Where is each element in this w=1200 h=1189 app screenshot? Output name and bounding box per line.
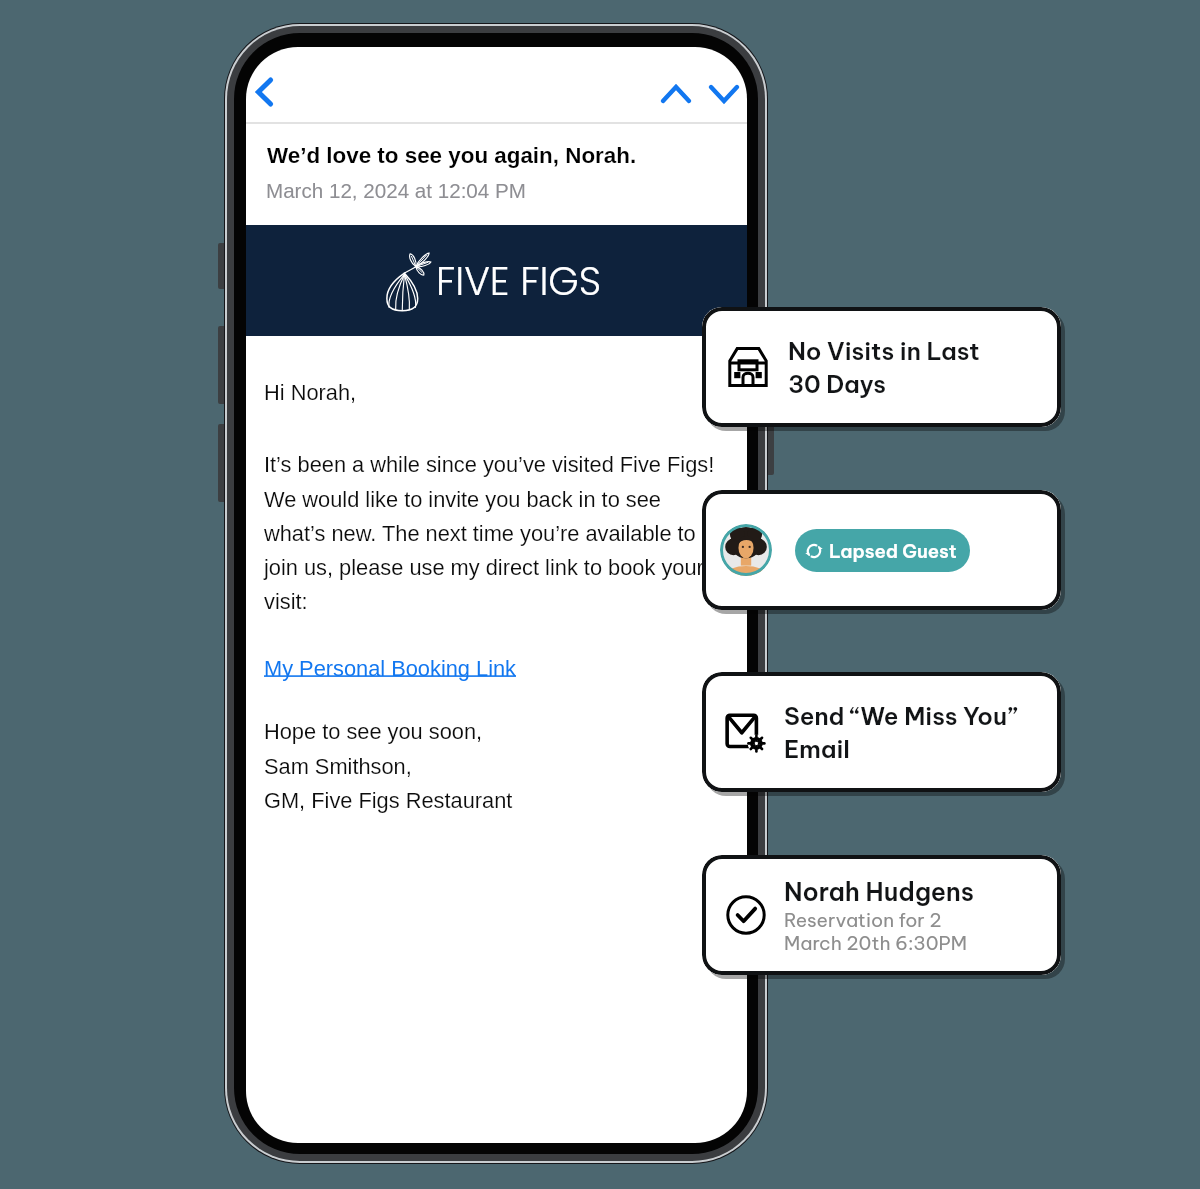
staticText: Reservation for 2 March 20th 6:30PM: [784, 908, 967, 955]
staticText: Norah Hudgens: [784, 876, 974, 908]
button[interactable]: Lapsed Guest: [795, 529, 970, 572]
button[interactable]: Previous message: [652, 70, 700, 118]
staticText: My Personal Booking Link: [264, 656, 517, 680]
staticText: No Visits in Last 30 Days: [788, 336, 980, 399]
staticText: We’d love to see you again, Norah.: [267, 143, 637, 168]
button[interactable]: Back: [246, 68, 282, 116]
staticText: Hi Norah,: [264, 380, 357, 404]
button[interactable]: Norah Hudgens reservation: [702, 855, 1061, 975]
button[interactable]: Lapsed Guest Norah: [702, 490, 1061, 610]
staticText: It’s been a while since you’ve visited F…: [264, 452, 715, 613]
staticText: Hope to see you soon, Sam Smithson, GM, …: [264, 719, 513, 812]
staticText: Send “We Miss You” Email: [784, 701, 1018, 764]
button[interactable]: My Personal Booking Link: [264, 656, 517, 680]
staticText: Lapsed Guest: [829, 539, 957, 563]
button[interactable]: Send We Miss You Email: [702, 672, 1061, 792]
button[interactable]: No Visits in Last 30 Days: [702, 307, 1061, 427]
button[interactable]: Next message: [700, 70, 747, 118]
staticText: FIVE FIGS: [436, 254, 602, 309]
staticText: March 12, 2024 at 12:04 PM: [266, 179, 526, 202]
